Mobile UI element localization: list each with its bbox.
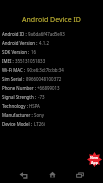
staticText: LT26i <box>34 121 45 127</box>
staticText: Android Device ID <box>22 15 81 25</box>
button[interactable]: Recent apps <box>70 166 90 183</box>
staticText: Signal Strength : <box>2 94 38 100</box>
staticText: 16 <box>31 49 37 55</box>
staticText: Device Model : <box>2 121 34 127</box>
staticText: Technology : <box>2 103 29 109</box>
button[interactable]: SDK Version : <box>0 47 103 56</box>
button[interactable]: Sim Serial : <box>0 74 103 83</box>
staticText: Sim Serial : <box>2 76 26 82</box>
button[interactable]: Back <box>14 166 34 183</box>
staticText: IMEI : <box>2 58 15 64</box>
staticText: Manufacturer : <box>2 112 34 118</box>
staticText: HSPA <box>29 103 40 109</box>
staticText: 89660048100372 <box>26 76 62 82</box>
staticText: 9a6da6f47ad5e93 <box>28 31 65 37</box>
staticText: +66899013 <box>37 85 60 91</box>
staticText: Wi-Fi MAC : <box>2 67 27 73</box>
staticText: 4.1.2 <box>39 40 49 46</box>
button[interactable]: Signal Strength : <box>0 92 103 101</box>
staticText: Phone Number : <box>2 85 37 91</box>
staticText: 90:e6:3d:7b:bb:34 <box>27 67 64 73</box>
staticText: 355131051833 <box>15 58 46 64</box>
button[interactable]: Home <box>42 166 62 183</box>
button[interactable]: Technology : <box>0 101 103 110</box>
staticText: Android Version : <box>2 40 39 46</box>
button[interactable]: IMEI : <box>0 56 103 65</box>
staticText: App <box>91 160 99 165</box>
button[interactable]: Android ID : <box>0 29 103 38</box>
button[interactable]: Android Version : <box>0 38 103 47</box>
staticText: Sony <box>34 112 45 118</box>
staticText: SDK Version : <box>2 49 31 55</box>
staticText: New <box>90 155 99 160</box>
button[interactable]: Manufacturer : <box>0 110 103 119</box>
button[interactable]: Phone Number : <box>0 83 103 92</box>
button[interactable]: Device Model : <box>0 119 103 128</box>
button[interactable]: Wi-Fi MAC : <box>0 65 103 74</box>
button[interactable]: New App <box>87 152 102 167</box>
staticText: Android ID : <box>2 31 28 37</box>
staticText: -73 <box>38 94 45 100</box>
